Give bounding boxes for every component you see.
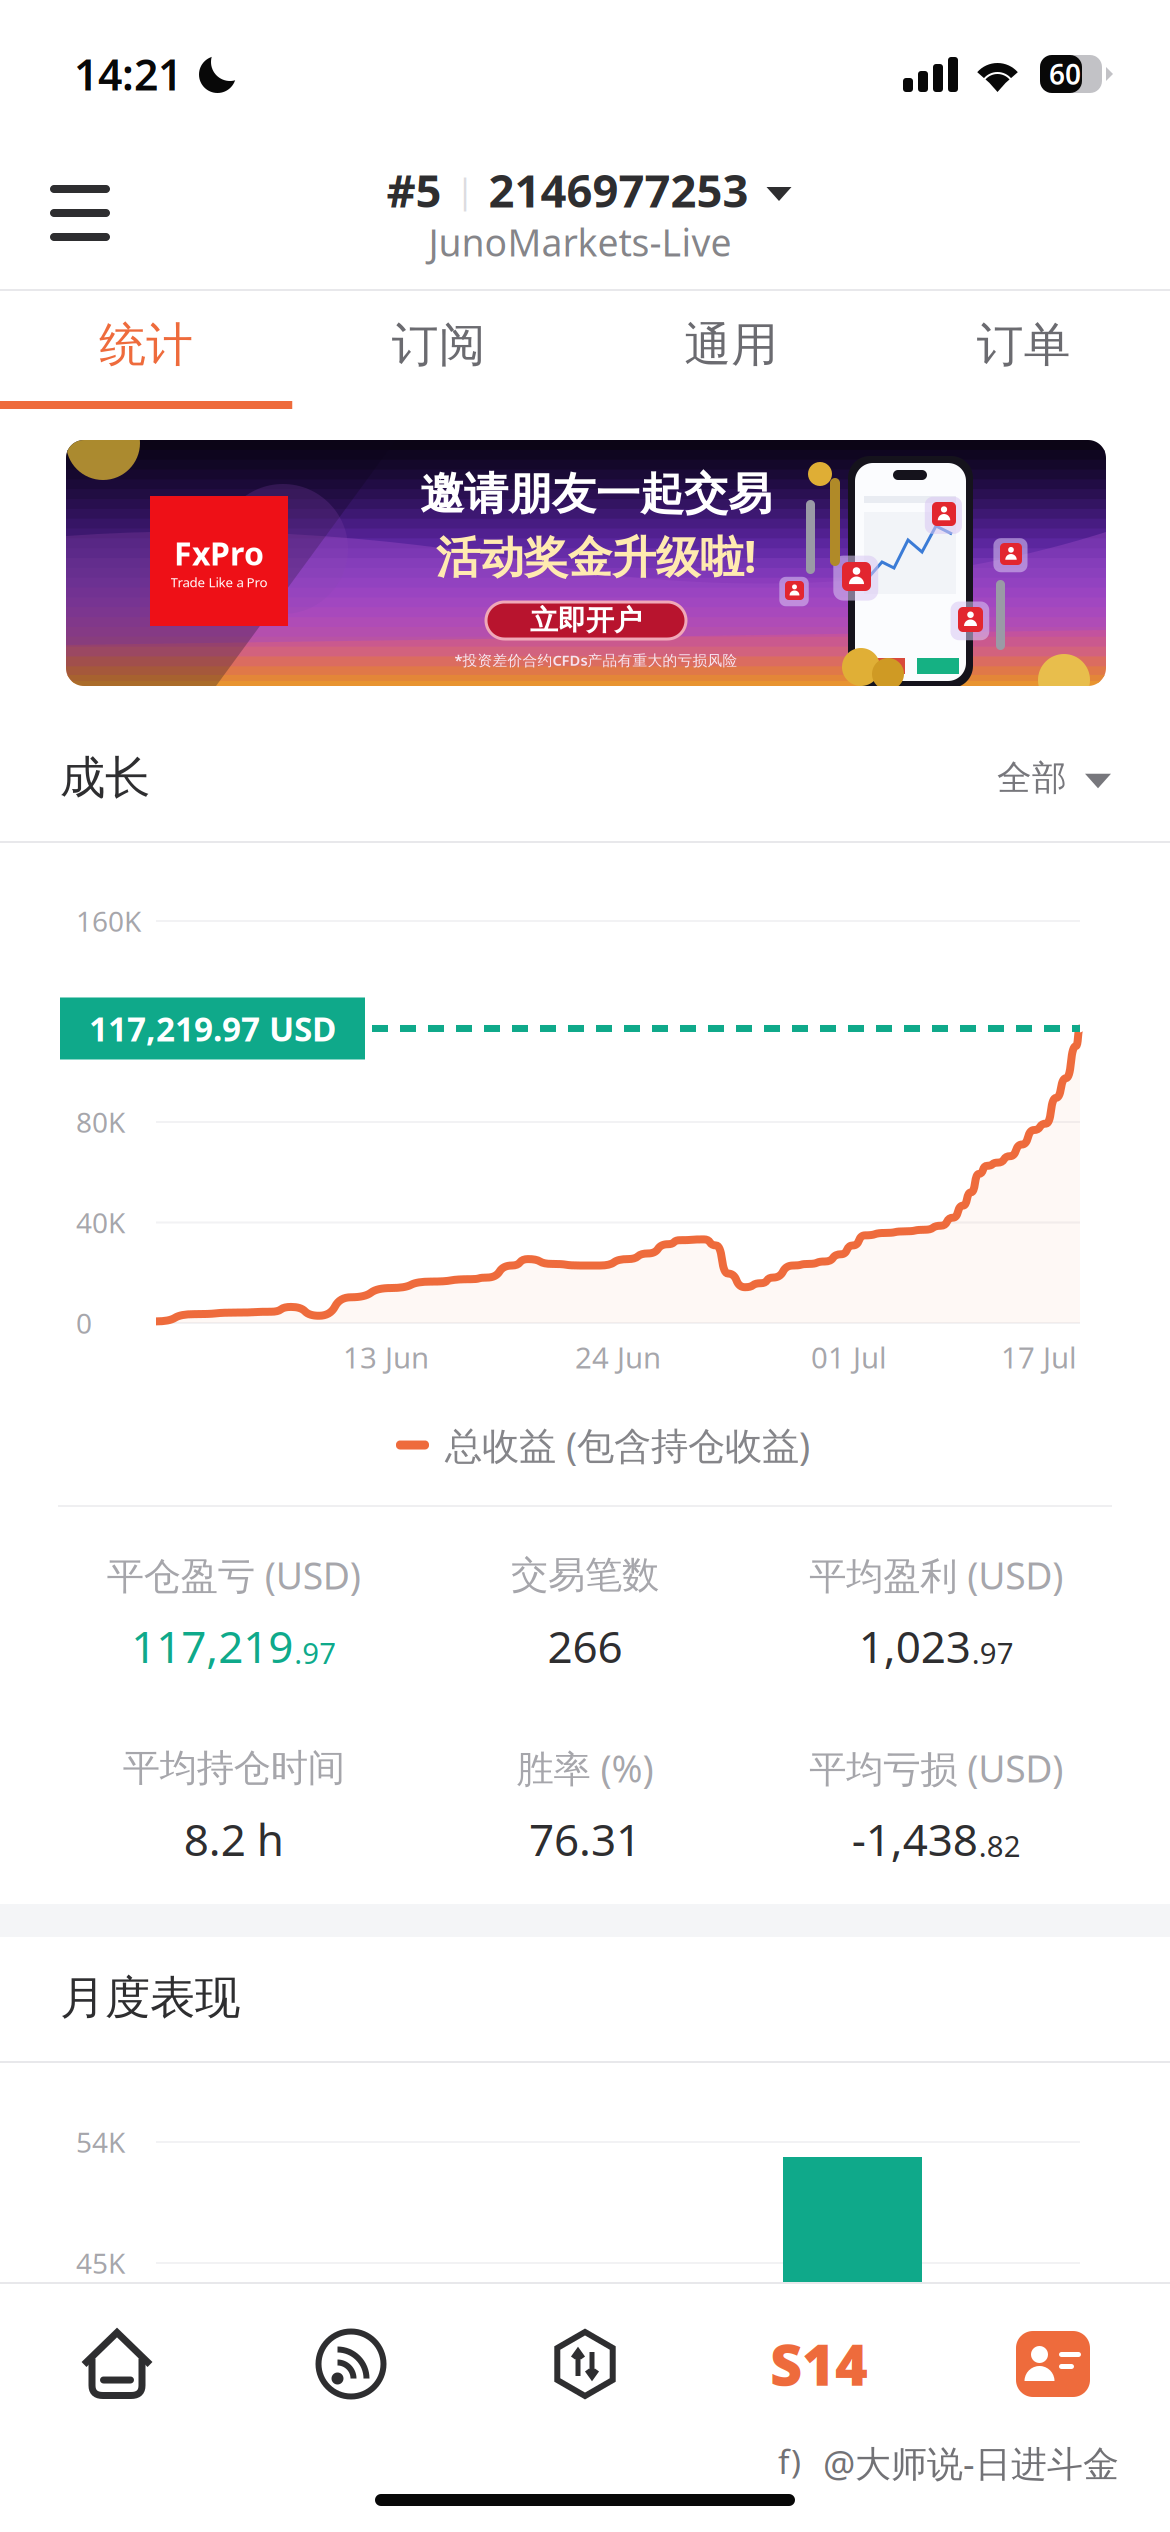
staticText: *投资差价合约CFDs产品有重大的亏损风险 [454,650,737,670]
staticText: 交易笔数 [511,1552,659,1598]
staticText: 160K [76,902,141,940]
staticText: 0 [76,1304,92,1342]
staticText: 54K [76,2123,125,2161]
staticText: 统计 [99,316,193,374]
button[interactable]: 全部 [911,743,1111,813]
staticText: | [455,167,474,213]
button[interactable]: Menu [18,148,142,278]
staticText: 14:21 [74,46,182,102]
staticText: 成长 [60,750,150,806]
button[interactable]: Signals [702,2302,936,2426]
staticText: @大师说-日进斗金 [823,2439,1119,2487]
staticText: 45K [76,2244,125,2282]
staticText: Trade Like a Pro [170,573,267,591]
staticText: 13 Jun [343,1337,429,1376]
staticText: 60 [1049,55,1081,93]
staticText: -1,438 [852,1810,978,1868]
button[interactable]: Trade [468,2302,702,2426]
staticText: 平均持仓时间 [123,1745,345,1791]
staticText: 总收益 (包含持仓收益) [445,1420,810,1470]
button[interactable]: FxPro [66,440,1106,686]
button[interactable]: Home [0,2302,234,2426]
staticText: 80K [76,1103,125,1141]
button[interactable]: 通用 [585,291,877,409]
staticText: 76.31 [529,1810,641,1868]
staticText: S14 [770,2327,868,2401]
staticText: 40K [76,1204,125,1241]
staticText: .82 [979,1826,1021,1865]
staticText: 266 [547,1617,622,1675]
staticText: 平均亏损 (USD) [809,1743,1063,1793]
staticText: 01 Jul [811,1337,887,1376]
button[interactable]: #5 [300,162,860,218]
staticText: 通用 [684,316,778,374]
staticText: #5 [386,160,441,220]
staticText: f) [778,2439,801,2483]
button[interactable]: 订阅 [292,291,585,409]
staticText: 平仓盈亏 (USD) [107,1550,361,1600]
staticText: 月度表现 [60,1970,240,2026]
staticText: 1,023 [859,1617,971,1675]
staticText: .97 [294,1633,336,1672]
staticText: 活动奖金升级啦! [436,527,756,585]
staticText: 立即开户 [530,603,642,638]
staticText: 117,219.97 USD [89,1006,336,1051]
staticText: 订单 [977,316,1071,374]
button[interactable]: Profile [936,2302,1170,2426]
staticText: FxPro [174,532,264,574]
staticText: 订阅 [392,316,486,374]
staticText: 平均盈利 (USD) [809,1550,1063,1600]
button[interactable]: 统计 [0,291,292,409]
staticText: .97 [972,1633,1014,1672]
staticText: 全部 [997,757,1067,799]
staticText: 117,219 [131,1617,293,1675]
button[interactable]: 订单 [877,291,1170,409]
staticText: 胜率 (%) [516,1743,653,1793]
staticText: 邀请朋友一起交易 [420,467,772,521]
staticText: 17 Jul [1001,1337,1077,1376]
staticText: 8.2 h [184,1810,284,1868]
staticText: 24 Jun [575,1337,661,1376]
button[interactable]: News [234,2302,468,2426]
staticText: 2146977253 [488,160,748,220]
staticText: JunoMarkets-Live [428,217,731,267]
